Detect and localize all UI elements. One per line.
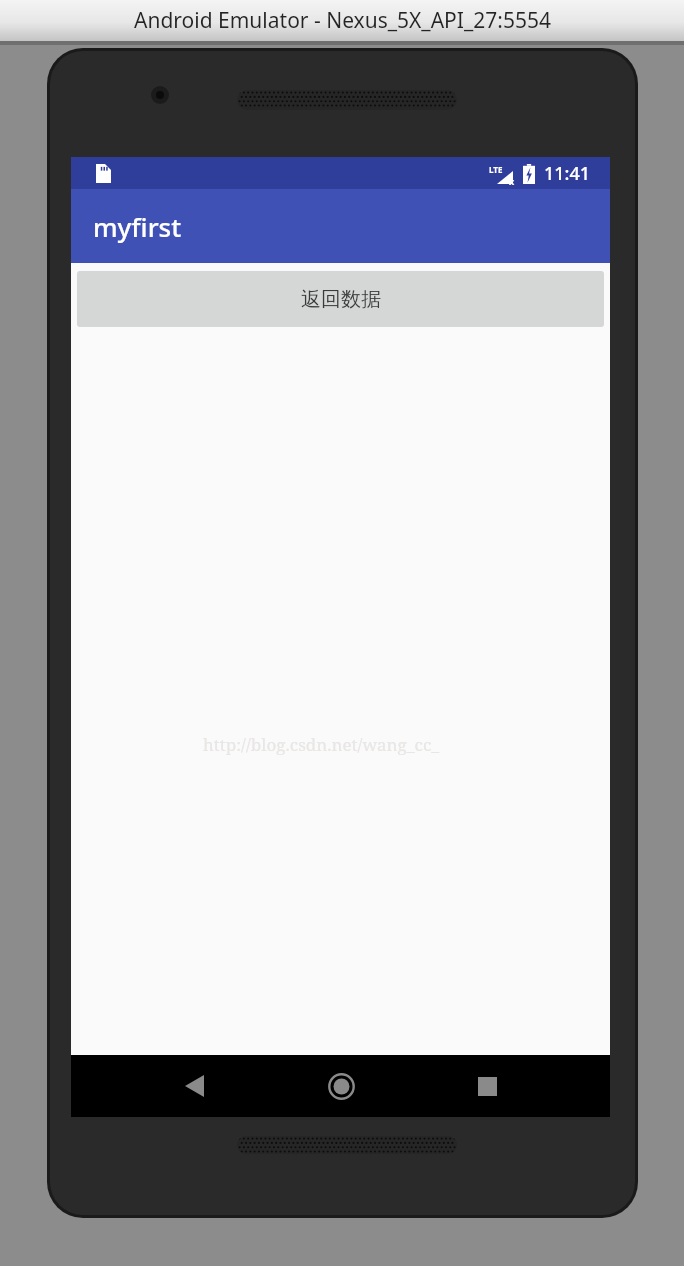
staticText: x [509,175,515,187]
staticText: http://blog.csdn.net/wang_cc_ [203,733,440,756]
staticText: 11:41 [544,161,591,186]
staticText: myfirst [93,209,182,244]
button[interactable]: Back [166,1058,222,1114]
button[interactable]: Home [313,1058,369,1114]
staticText: 返回数据 [301,287,381,312]
staticText: LTE [489,164,503,175]
staticText: Android Emulator - Nexus_5X_API_27:5554 [134,6,551,35]
button[interactable]: Recent apps [459,1058,515,1114]
button[interactable]: 返回数据 [77,271,604,327]
